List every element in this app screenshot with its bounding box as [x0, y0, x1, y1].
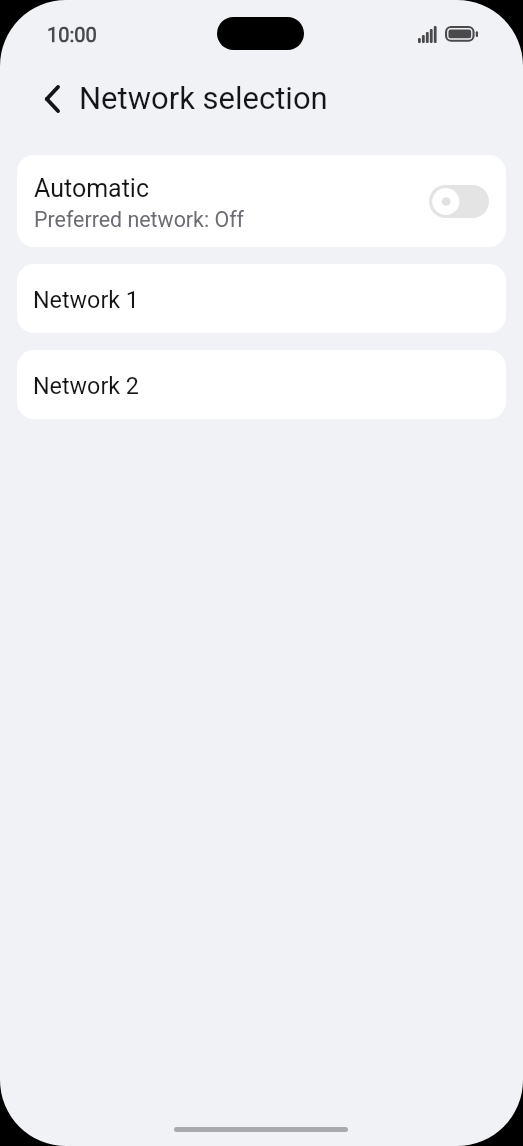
staticText: Network 1 — [33, 286, 139, 313]
button[interactable]: Back — [29, 77, 73, 121]
staticText: Network selection — [79, 80, 328, 116]
button[interactable]: Network 2 — [17, 350, 506, 419]
staticText: Preferred network: Off — [34, 207, 245, 232]
staticText: 10:00 — [47, 23, 97, 46]
staticText: Automatic — [34, 174, 150, 203]
button[interactable]: Automatic network toggle — [429, 185, 489, 218]
button[interactable]: Network 1 — [17, 264, 506, 333]
button[interactable]: Automatic — [17, 155, 506, 247]
staticText: Network 2 — [33, 372, 139, 399]
